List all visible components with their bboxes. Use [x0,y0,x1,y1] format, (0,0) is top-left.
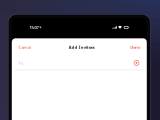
staticText: To: [18,60,23,65]
staticText: Cancel [18,45,31,50]
staticText: Done [130,45,140,50]
button[interactable]: Done [129,42,141,52]
staticText: 15:07 [29,25,38,30]
button[interactable]: Add contact [133,59,140,67]
staticText: Add Invitees [69,45,95,50]
button[interactable]: Cancel [17,42,32,52]
